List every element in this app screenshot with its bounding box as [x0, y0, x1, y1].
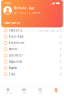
- button[interactable]: Ana Sayfa: [0, 88, 16, 94]
- button[interactable]: Vadesiz TL: [0, 27, 64, 34]
- staticText: HESAPLARIM: [4, 21, 20, 25]
- button[interactable]: Başvurular: [0, 59, 64, 65]
- button[interactable]: Kredi Kartı: [0, 34, 64, 40]
- button[interactable]: Yatırım: [0, 46, 64, 52]
- staticText: Kredilerim: [9, 41, 24, 45]
- button[interactable]: Merhaba, Ayşe: [1, 6, 63, 15]
- button[interactable]: Kredilerim: [0, 40, 64, 46]
- staticText: Yatırım: [9, 47, 17, 51]
- staticText: Kredi Kartı: [9, 35, 24, 38]
- button[interactable]: Ödemeler: [0, 52, 64, 59]
- staticText: Ödemeler: [9, 54, 23, 57]
- staticText: İşlemler: [37, 92, 42, 94]
- staticText: Başvurular: [9, 60, 22, 63]
- staticText: 9:41: [4, 1, 11, 5]
- button[interactable]: Profil: [48, 88, 64, 94]
- staticText: 24.567,80 TL: [39, 29, 58, 32]
- staticText: Ayarlar: [9, 66, 17, 70]
- staticText: Ana Sayfa: [4, 92, 11, 94]
- button[interactable]: Çıkış: [0, 71, 64, 77]
- staticText: Vadesiz TL: [9, 29, 22, 32]
- staticText: Profil: [54, 92, 58, 94]
- button[interactable]: İşlemler: [32, 88, 48, 94]
- staticText: Kartlar: [21, 92, 26, 94]
- button[interactable]: Kartlar: [16, 88, 32, 94]
- staticText: Son giriş 12 Haziran: [14, 11, 41, 14]
- staticText: Merhaba, Ayşe: [14, 6, 35, 10]
- staticText: Çıkış: [9, 72, 15, 76]
- button[interactable]: Ayarlar: [0, 65, 64, 71]
